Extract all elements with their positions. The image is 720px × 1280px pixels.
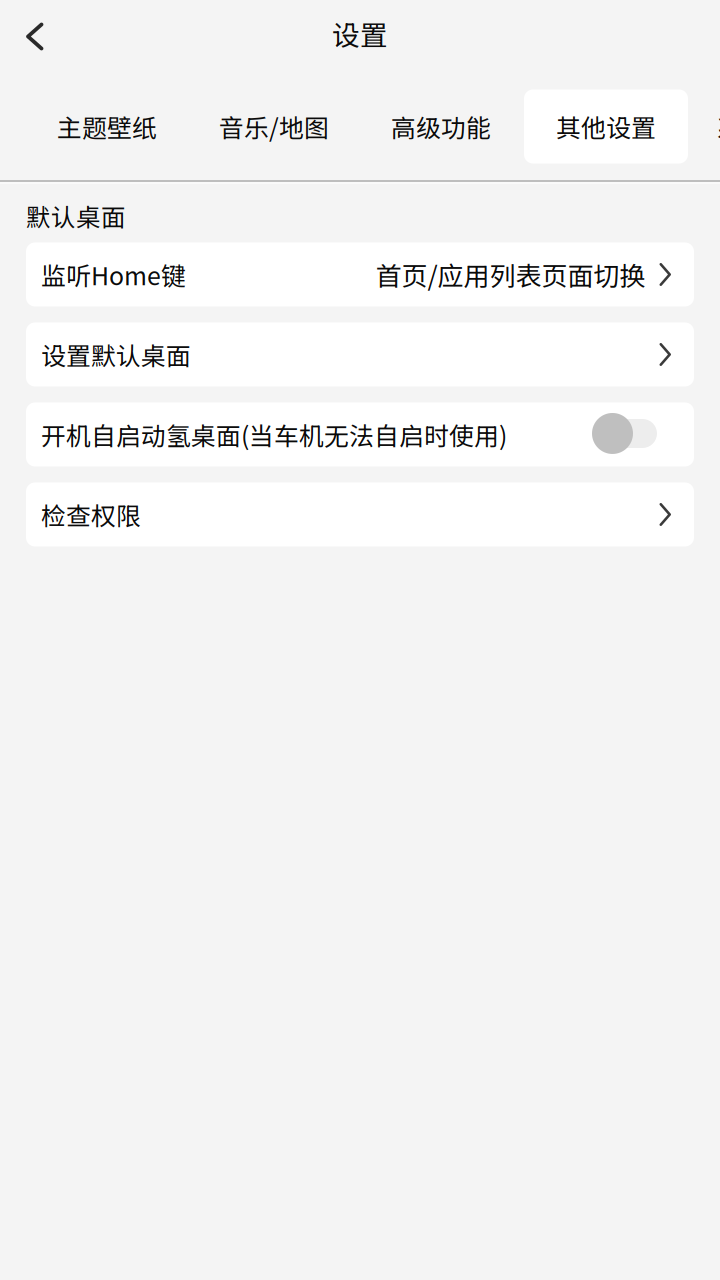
staticText: 其他设置 <box>556 108 656 144</box>
button[interactable]: 设置默认桌面 <box>26 322 694 386</box>
button[interactable]: 主题壁纸 <box>24 89 190 163</box>
button[interactable]: 系统设置 <box>716 73 720 180</box>
button[interactable]: 开机自启动氢桌面(当车机无法自启时使用) <box>26 402 694 466</box>
button[interactable]: 检查权限 <box>26 482 694 546</box>
staticText: 检查权限 <box>41 496 141 532</box>
staticText: 监听Home键 <box>41 256 186 292</box>
staticText: 默认桌面 <box>26 198 126 233</box>
staticText: 音乐/地图 <box>219 108 329 144</box>
button[interactable]: 返回 <box>0 6 65 66</box>
staticText: 设置默认桌面 <box>41 336 191 372</box>
staticText: 主题壁纸 <box>57 108 157 144</box>
staticText: 设置 <box>332 14 388 53</box>
staticText: 系统设置 <box>716 108 720 144</box>
staticText: 高级功能 <box>391 108 491 144</box>
button[interactable]: 监听Home键 <box>26 242 694 306</box>
button[interactable]: 其他设置 <box>524 89 688 163</box>
button[interactable]: 高级功能 <box>358 89 524 163</box>
staticText: 首页/应用列表页面切换 <box>375 256 645 293</box>
button[interactable]: 音乐/地图 <box>190 89 358 163</box>
staticText: 开机自启动氢桌面(当车机无法自启时使用) <box>41 416 507 452</box>
